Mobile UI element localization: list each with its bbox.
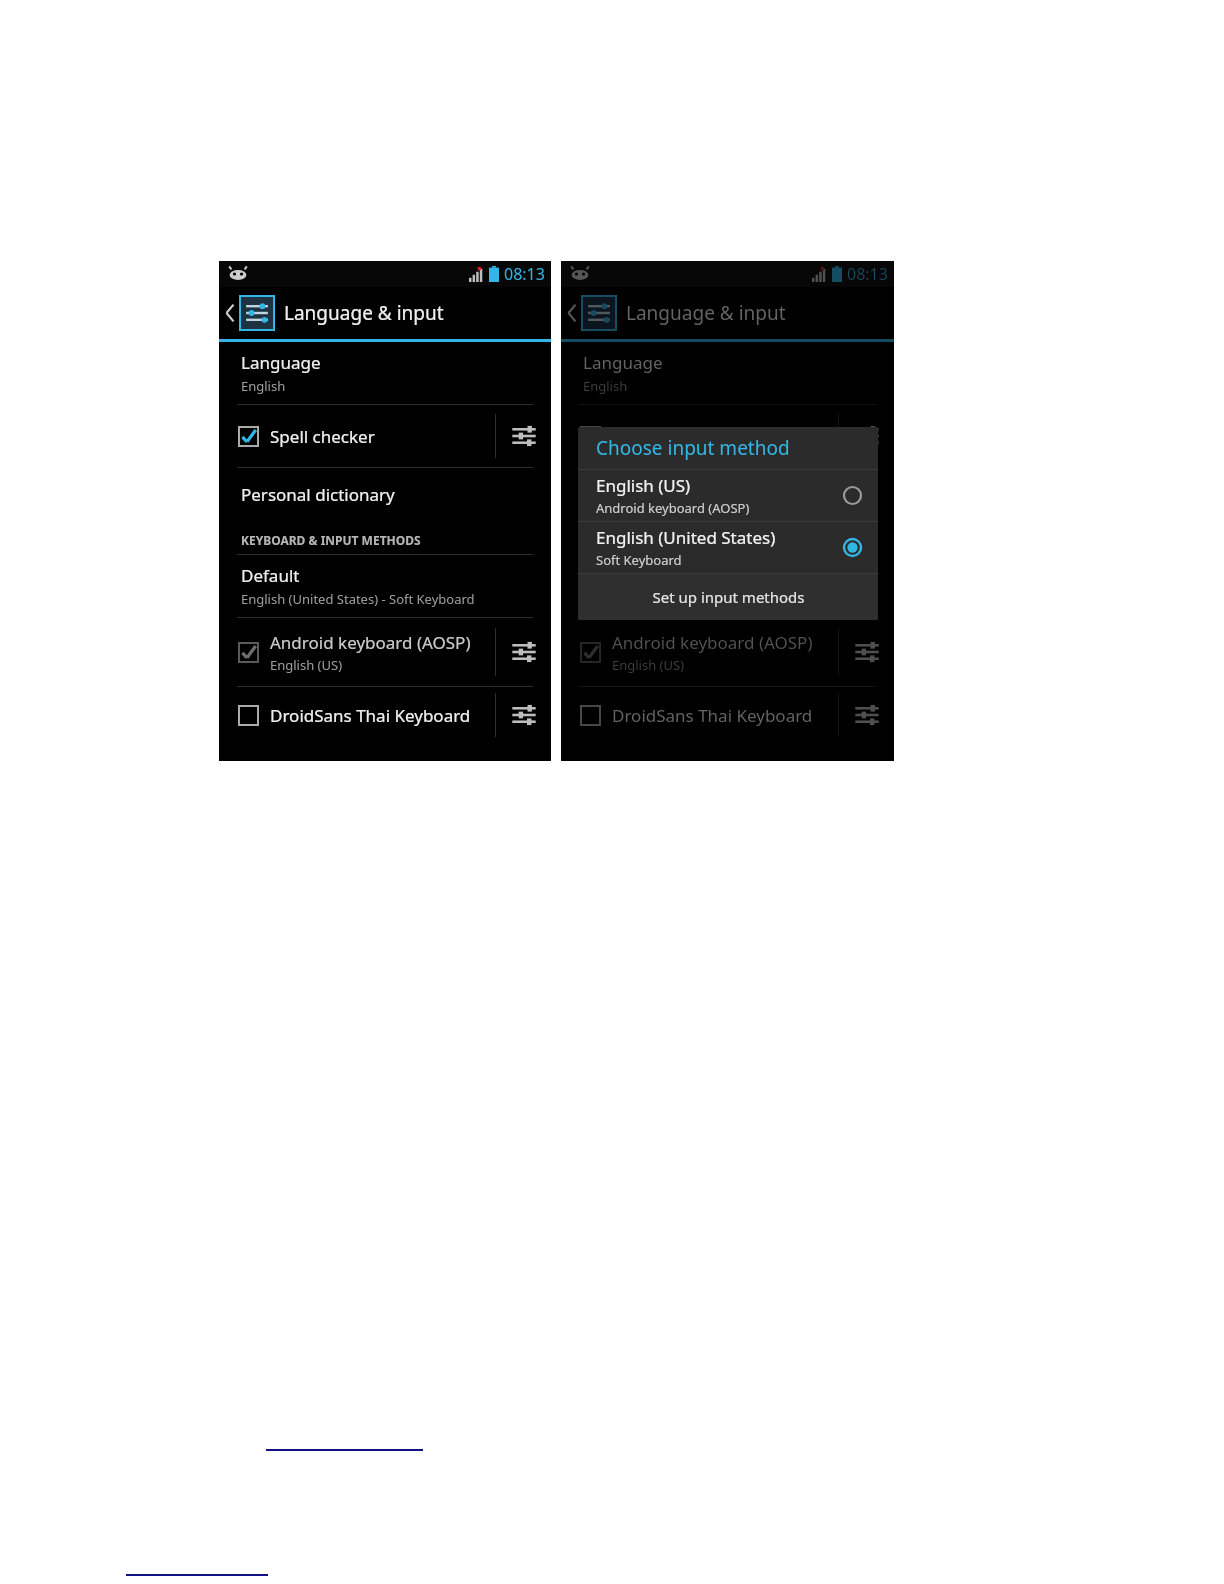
button[interactable]: Personal dictionary bbox=[561, 468, 894, 520]
staticText: 08:13 bbox=[504, 263, 545, 285]
staticText: Personal dictionary bbox=[241, 483, 395, 506]
button[interactable]: Default bbox=[219, 555, 551, 617]
staticText: Language & input bbox=[626, 300, 786, 326]
staticText: DroidSans Thai Keyboard bbox=[270, 704, 471, 727]
staticText: KEYBOARD & INPUT METHODS bbox=[241, 532, 421, 548]
staticText: English (US) bbox=[270, 656, 343, 674]
button[interactable]: Personal dictionary bbox=[219, 468, 551, 520]
other: Back bbox=[223, 302, 237, 324]
staticText: Spell checker bbox=[612, 425, 717, 448]
staticText: Language bbox=[583, 351, 663, 374]
staticText: Default bbox=[583, 564, 642, 587]
button[interactable]: Spell checker bbox=[219, 405, 551, 467]
staticText: Language & input bbox=[284, 300, 444, 326]
staticText: Default bbox=[241, 564, 300, 587]
button[interactable]: DroidSans Thai Keyboard bbox=[219, 687, 551, 743]
staticText: KEYBOARD & INPUT METHODS bbox=[583, 532, 763, 548]
staticText: Language bbox=[241, 351, 321, 374]
staticText: Spell checker bbox=[270, 425, 375, 448]
button[interactable]: Set up input methods bbox=[578, 574, 878, 620]
staticText: English bbox=[583, 377, 628, 395]
button[interactable]: Spell checker bbox=[561, 405, 894, 467]
staticText: Personal dictionary bbox=[583, 483, 737, 506]
staticText: English (US) bbox=[596, 474, 691, 497]
staticText: Android keyboard (AOSP) bbox=[612, 631, 813, 654]
staticText: Set up input methods bbox=[652, 587, 805, 607]
button[interactable]: Default bbox=[561, 555, 894, 617]
button[interactable]: Android keyboard settings bbox=[496, 618, 551, 686]
staticText: English (United States) - Soft Keyboard bbox=[583, 590, 817, 608]
button[interactable]: Language bbox=[561, 342, 894, 404]
staticText: 08:13 bbox=[847, 263, 888, 285]
staticText: DroidSans Thai Keyboard bbox=[612, 704, 813, 727]
staticText: Choose input method bbox=[596, 435, 790, 461]
button[interactable]: Back bbox=[219, 287, 551, 339]
button[interactable]: English (United States) bbox=[578, 522, 878, 573]
button[interactable]: Android keyboard (AOSP) bbox=[219, 618, 551, 686]
button[interactable]: Spell checker settings bbox=[496, 405, 551, 467]
button[interactable]: Language bbox=[219, 342, 551, 404]
staticText: English (United States) bbox=[596, 526, 776, 549]
staticText: Android keyboard (AOSP) bbox=[596, 499, 750, 517]
staticText: English (US) bbox=[612, 656, 685, 674]
staticText: English bbox=[241, 377, 286, 395]
button[interactable]: English (US) bbox=[578, 470, 878, 521]
other: Back bbox=[565, 302, 579, 324]
staticText: English (United States) - Soft Keyboard bbox=[241, 590, 475, 608]
staticText: Android keyboard (AOSP) bbox=[270, 631, 471, 654]
button[interactable]: Android keyboard settings bbox=[839, 618, 894, 686]
button[interactable]: DroidSans Thai settings bbox=[496, 687, 551, 743]
button[interactable]: DroidSans Thai Keyboard bbox=[561, 687, 894, 743]
button[interactable]: Spell checker settings bbox=[839, 405, 894, 467]
staticText: Soft Keyboard bbox=[596, 551, 682, 569]
button[interactable]: DroidSans Thai settings bbox=[839, 687, 894, 743]
button[interactable]: Android keyboard (AOSP) bbox=[561, 618, 894, 686]
button[interactable]: Back bbox=[561, 287, 894, 339]
